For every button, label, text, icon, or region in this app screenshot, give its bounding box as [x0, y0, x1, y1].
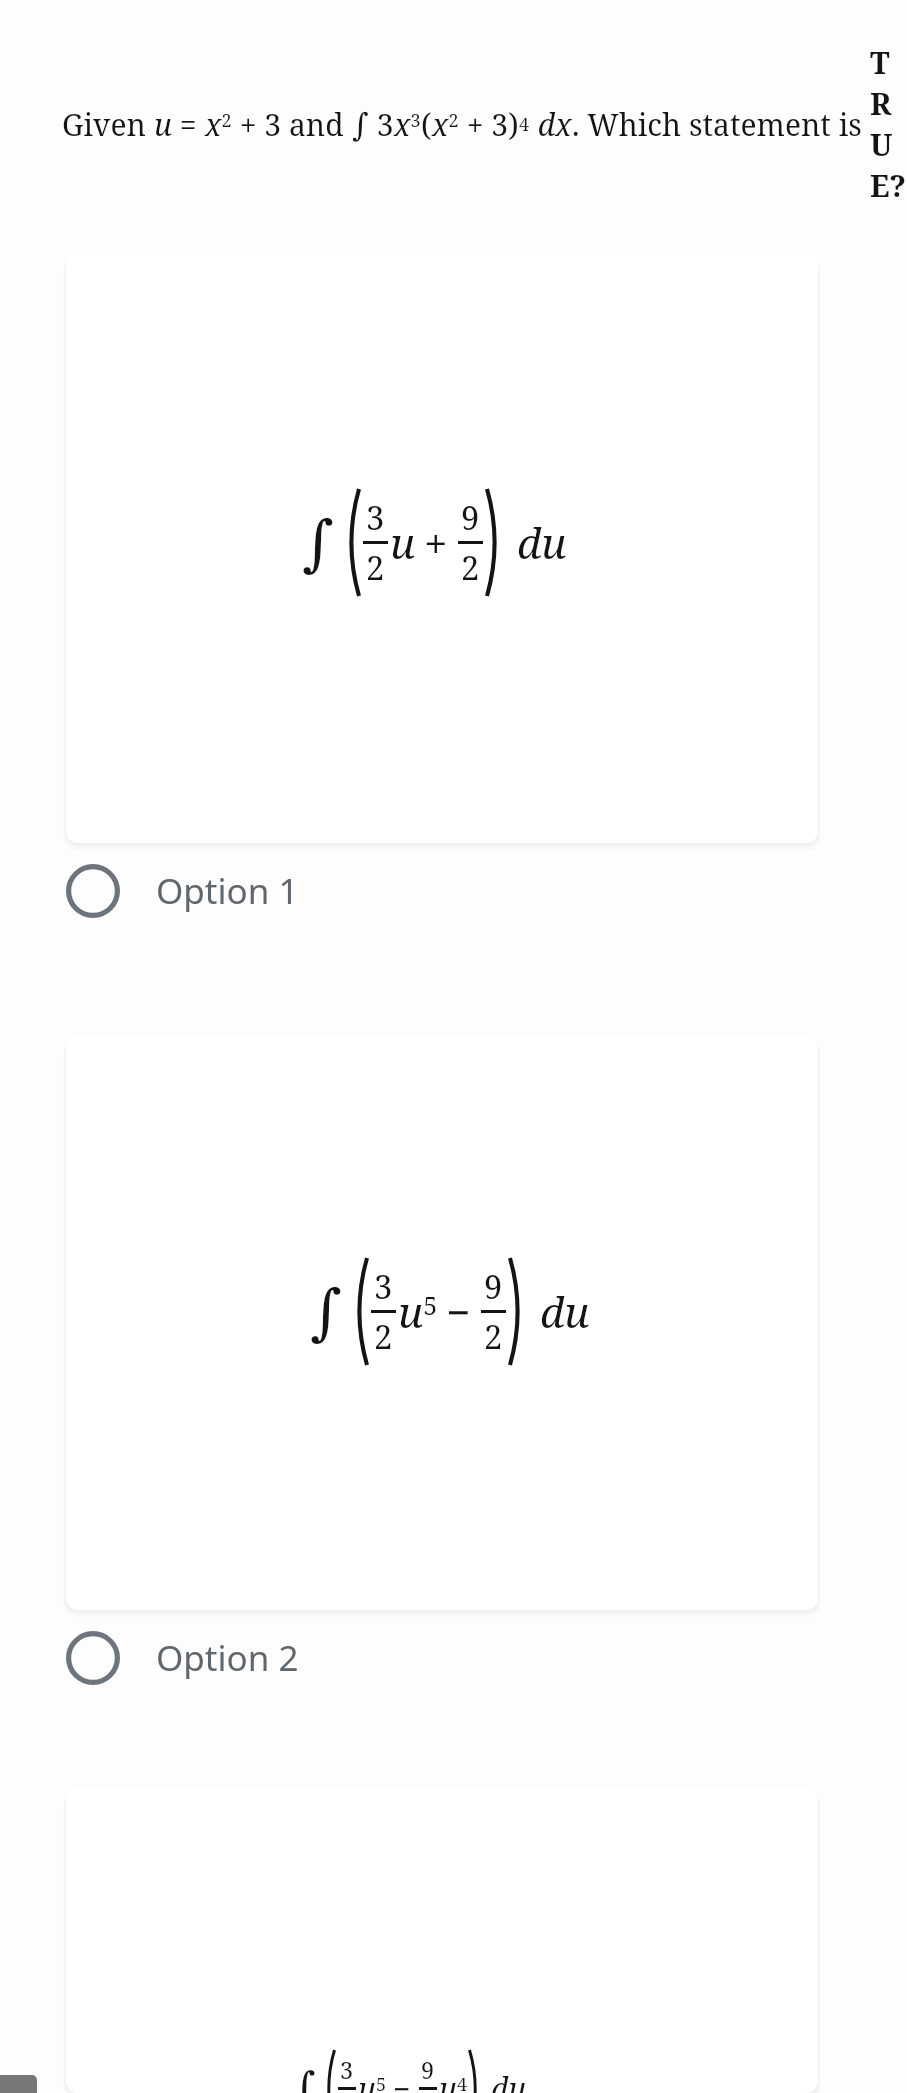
button[interactable]: ∫	[66, 1036, 818, 1610]
staticText: ∫	[310, 1276, 342, 1347]
staticText: x3	[394, 104, 421, 145]
staticText: ∫	[352, 106, 369, 143]
staticText: . Which statement is	[572, 104, 870, 145]
staticText: 3	[369, 104, 394, 145]
staticText: 9	[484, 1264, 503, 1309]
staticText: 2	[366, 545, 385, 590]
staticText: 3	[374, 1264, 393, 1309]
staticText: u	[390, 514, 416, 571]
button[interactable]: Option 2	[0, 1610, 907, 1706]
staticText: + 3)	[459, 104, 519, 145]
staticText: du	[517, 514, 567, 571]
other: Option 2	[66, 1631, 120, 1685]
staticText: x2	[205, 104, 232, 145]
staticText: x2	[432, 104, 459, 145]
staticText: u	[154, 104, 172, 145]
staticText: TRUE?	[870, 42, 907, 206]
staticText: 2	[374, 1314, 393, 1359]
staticText: (	[421, 104, 432, 145]
staticText: u5	[398, 1283, 438, 1340]
staticText: =	[172, 104, 205, 145]
staticText: Option 1	[156, 867, 299, 915]
staticText: −	[446, 1283, 471, 1340]
staticText: 9	[421, 2054, 435, 2086]
staticText: 4	[519, 112, 530, 137]
staticText: du	[491, 2068, 527, 2093]
staticText: 9	[461, 495, 480, 540]
staticText: Option 2	[156, 1634, 299, 1682]
staticText: ∫	[302, 507, 334, 578]
staticText: du	[540, 1283, 590, 1340]
button[interactable]: ∫	[66, 254, 818, 843]
button[interactable]: Option 1	[0, 843, 907, 939]
button[interactable]: ∫	[66, 1788, 818, 2093]
staticText: u5	[358, 2068, 387, 2093]
staticText: dx	[530, 104, 572, 145]
staticText: + 3 and	[232, 104, 352, 145]
staticText: −	[393, 2068, 411, 2093]
staticText: 3	[366, 495, 385, 540]
staticText: ∫	[293, 2063, 316, 2093]
staticText: 3	[340, 2054, 354, 2086]
staticText: Given	[62, 104, 154, 145]
staticText: 2	[484, 1314, 503, 1359]
staticText: 2	[461, 545, 480, 590]
staticText: +	[424, 514, 448, 571]
other: Option 1	[66, 864, 120, 918]
staticText: u4	[439, 2068, 468, 2093]
